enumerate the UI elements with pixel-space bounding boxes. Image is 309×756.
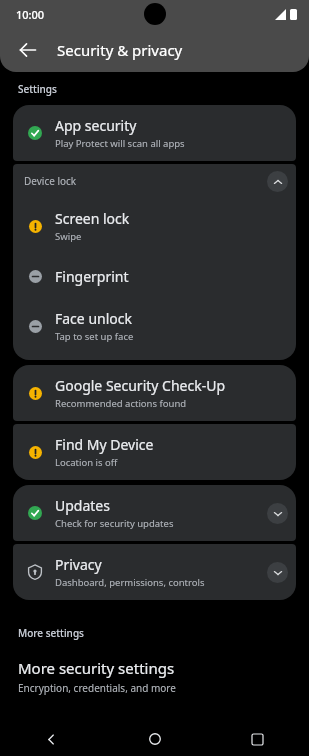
button[interactable]: Privacy <box>13 544 296 600</box>
staticText: Screen lock <box>55 209 130 228</box>
button[interactable]: Recent apps <box>206 722 309 756</box>
button[interactable]: Expand Privacy <box>267 562 288 583</box>
staticText: Fingerprint <box>55 267 129 286</box>
button[interactable]: Expand Updates <box>267 503 288 524</box>
button[interactable]: Collapse Device lock <box>267 171 288 192</box>
button[interactable]: Google Security Check-Up <box>13 365 296 421</box>
staticText: Location is off <box>55 456 118 469</box>
staticText: Face unlock <box>55 309 132 328</box>
staticText: Settings <box>18 82 57 96</box>
staticText: Swipe <box>55 230 82 243</box>
staticText: Find My Device <box>55 435 154 454</box>
staticText: Privacy <box>55 555 102 574</box>
button[interactable]: Back <box>8 30 48 70</box>
staticText: Play Protect will scan all apps <box>55 137 185 150</box>
staticText: Encryption, credentials, and more <box>18 681 176 695</box>
button[interactable]: Fingerprint <box>13 254 296 298</box>
button[interactable]: Screen lock <box>13 198 296 254</box>
staticText: Check for security updates <box>55 517 174 530</box>
button[interactable]: Updates <box>13 485 296 541</box>
staticText: Updates <box>55 496 110 515</box>
staticText: More settings <box>18 626 84 640</box>
button[interactable]: App security <box>13 105 296 161</box>
staticText: Dashboard, permissions, controls <box>55 576 205 589</box>
button[interactable]: Find My Device <box>13 424 296 480</box>
staticText: Google Security Check-Up <box>55 376 226 395</box>
button[interactable]: Back <box>0 722 103 756</box>
staticText: Security & privacy <box>57 40 183 60</box>
staticText: 10:00 <box>16 7 45 22</box>
staticText: Tap to set up face <box>55 330 134 343</box>
staticText: More security settings <box>18 658 175 678</box>
staticText: Device lock <box>24 174 77 188</box>
staticText: App security <box>55 116 137 135</box>
button[interactable]: Face unlock <box>13 298 296 354</box>
button[interactable]: Home <box>103 722 206 756</box>
staticText: Recommended actions found <box>55 397 187 410</box>
